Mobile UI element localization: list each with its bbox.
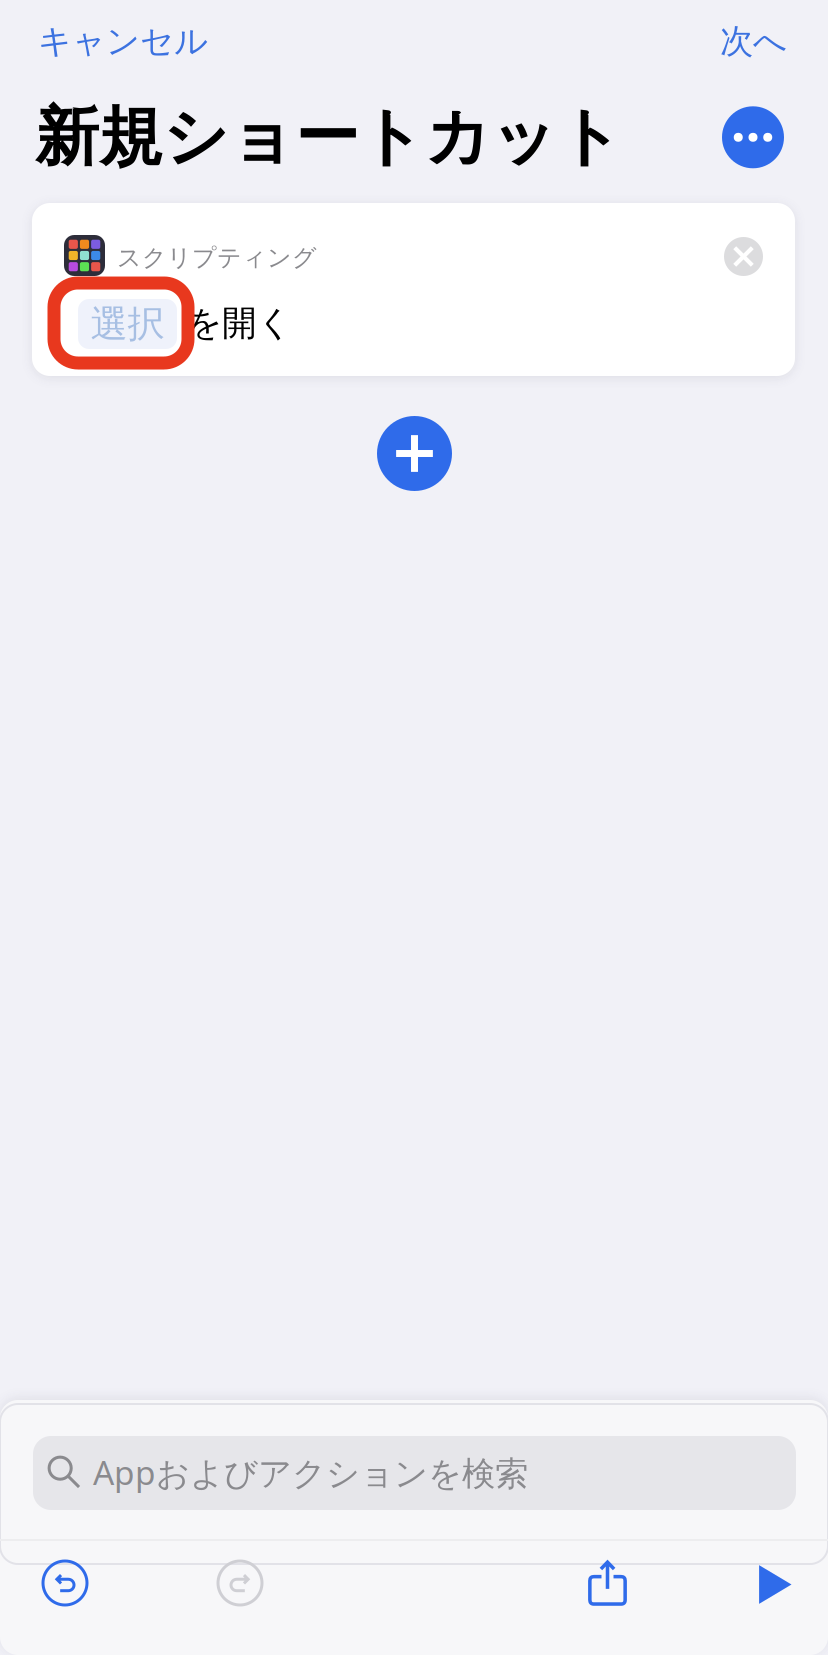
staticText: スクリプティング	[117, 243, 317, 272]
staticText: を開く	[187, 302, 292, 345]
button[interactable]: 取り消す	[43, 1561, 87, 1605]
button[interactable]: 選択	[78, 299, 177, 349]
button[interactable]: 実行	[751, 1562, 796, 1607]
button[interactable]: その他	[722, 106, 784, 168]
button[interactable]: やり直す	[218, 1561, 262, 1605]
staticText: 次へ	[720, 21, 787, 62]
button[interactable]: アクションを追加	[377, 416, 452, 491]
button[interactable]: Appおよびアクションを検索	[33, 1436, 796, 1510]
button[interactable]: キャンセル	[38, 21, 208, 62]
staticText: 新規ショートカット	[35, 98, 623, 177]
button[interactable]: 次へ	[720, 21, 787, 62]
button[interactable]: 削除	[724, 237, 763, 276]
staticText: 選択	[90, 301, 164, 347]
button[interactable]: 共有	[583, 1558, 632, 1607]
staticText: キャンセル	[38, 21, 208, 62]
staticText: Appおよびアクションを検索	[93, 1450, 528, 1494]
